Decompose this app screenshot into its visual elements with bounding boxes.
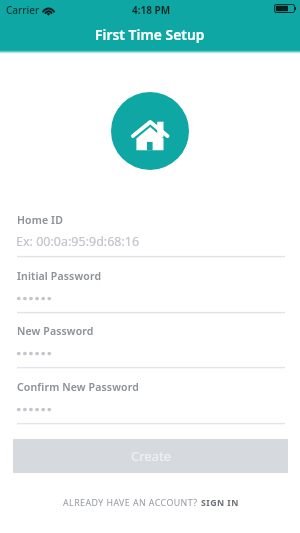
staticText: Create bbox=[131, 447, 171, 465]
button[interactable]: Confirm New Password bbox=[17, 377, 285, 429]
staticText: Confirm New Password bbox=[17, 380, 139, 394]
staticText: Ex: 00:0a:95:9d:68:16 bbox=[16, 233, 140, 250]
button[interactable]: Initial Password bbox=[17, 266, 285, 318]
button[interactable]: ALREADY HAVE AN ACCOUNT? bbox=[63, 497, 239, 509]
button[interactable]: Home ID bbox=[17, 210, 285, 262]
other: Wifi signal bbox=[42, 6, 55, 15]
staticText: SIGN IN bbox=[201, 497, 239, 509]
other: Battery level bbox=[274, 4, 296, 13]
staticText: 4:18 PM bbox=[132, 3, 171, 17]
staticText: Initial Password bbox=[17, 269, 102, 283]
staticText: Home ID bbox=[17, 213, 63, 227]
button[interactable]: New Password bbox=[17, 321, 285, 373]
staticText: Carrier bbox=[6, 3, 40, 17]
staticText: New Password bbox=[17, 324, 94, 338]
staticText: First Time Setup bbox=[95, 25, 205, 44]
staticText: ALREADY HAVE AN ACCOUNT? bbox=[63, 497, 201, 509]
